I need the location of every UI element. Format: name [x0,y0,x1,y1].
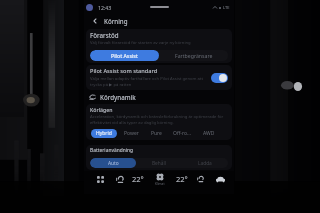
button[interactable]: Hybrid [91,129,117,138]
button[interactable]: Pilot Assist [90,50,159,61]
button[interactable]: Pilot Assist som standard [86,65,232,90]
button[interactable]: Auto [90,158,136,168]
button[interactable]: Car settings [214,173,226,185]
staticText: Ladda [198,160,212,167]
button[interactable]: Ladda [182,158,228,168]
staticText: LTE [223,5,230,10]
staticText: Pure [151,130,162,137]
button[interactable]: Power [119,129,144,138]
button[interactable]: Klimat [152,170,168,188]
staticText: Förarstöd [90,31,119,39]
staticText: Körning [104,17,128,25]
button[interactable]: 22° [176,174,188,184]
button[interactable]: AWD [198,129,220,138]
staticText: 12:43 [98,4,112,11]
staticText: Auto [108,160,119,167]
button[interactable]: Off-ro… [168,129,196,138]
staticText: Power [124,130,139,137]
staticText: Behåll [152,160,166,167]
button[interactable]: Driver seat heating [114,174,125,185]
staticText: Pilot Assist [111,52,138,59]
staticText: Acceleration, kördynamik och bränsleförb… [90,114,228,126]
button[interactable]: Fartbegränsare [159,50,228,61]
staticText: Off-ro… [173,130,191,137]
button[interactable]: Pure [146,129,167,138]
button[interactable]: Profile [86,4,93,11]
button[interactable]: Behåll [136,158,182,168]
button[interactable]: Back [89,15,101,27]
staticText: Körlägen [90,106,113,113]
button[interactable]: 22° [132,174,144,184]
staticText: Hybrid [96,130,112,137]
button[interactable]: Passenger seat heating [195,174,206,185]
button[interactable]: Apps [95,174,106,185]
staticText: Fartbegränsare [175,52,213,59]
staticText: Pilot Assist som standard [90,67,158,75]
staticText: Klimat [155,182,165,186]
staticText: Batterianvändning [90,147,133,154]
staticText: Välja mellan adaptiv farthållare och Pil… [90,76,207,88]
staticText: AWD [203,130,215,137]
staticText: Välj förvalt förarstöd för starten av va… [90,40,191,46]
staticText: Kördynamik [100,93,136,101]
